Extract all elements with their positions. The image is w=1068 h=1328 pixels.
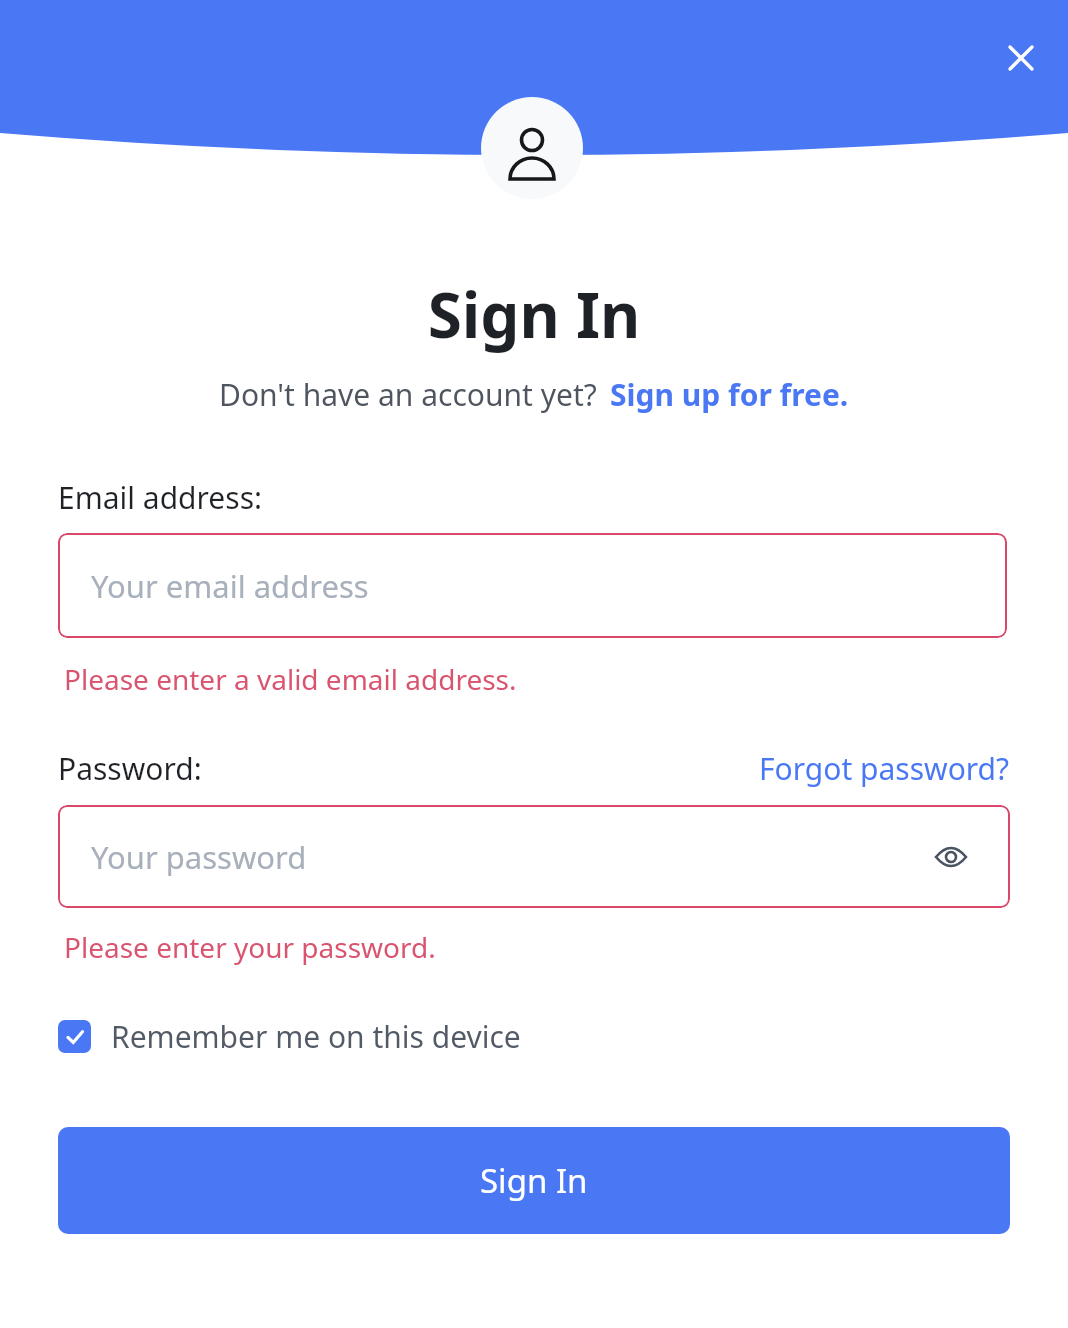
button[interactable]: Forgot password? [759, 748, 1010, 789]
staticText: Forgot password? [759, 748, 1010, 789]
button[interactable]: Your email address [58, 533, 1007, 638]
staticText: Sign up for free. [610, 374, 849, 415]
button[interactable]: Show password [929, 835, 973, 879]
button[interactable]: Sign up for free. [610, 374, 849, 415]
staticText: Email address: [58, 477, 263, 518]
staticText: Please enter your password. [64, 928, 436, 966]
staticText: Your password [91, 836, 307, 878]
staticText: Sign In [480, 1158, 588, 1203]
staticText: Your email address [91, 565, 369, 607]
staticText: Sign In [0, 272, 1068, 356]
staticText: Remember me on this device [111, 1016, 521, 1057]
button[interactable]: Close [986, 23, 1056, 93]
staticText: Don't have an account yet? [219, 374, 597, 415]
button[interactable]: Remember me on this device [58, 1016, 521, 1057]
button[interactable]: Your password [58, 805, 1010, 908]
staticText: Password: [58, 748, 202, 789]
button[interactable]: Sign In [58, 1127, 1010, 1234]
staticText: Please enter a valid email address. [64, 660, 517, 698]
